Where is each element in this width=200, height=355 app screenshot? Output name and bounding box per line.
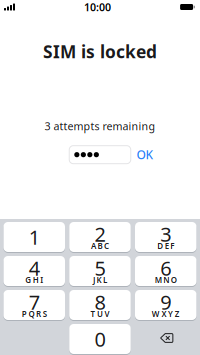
staticText: 3 attempts remaining — [44, 119, 155, 133]
staticText: 9 — [160, 289, 171, 315]
staticText: X — [161, 309, 166, 319]
staticText: D — [157, 241, 163, 251]
staticText: 2 — [94, 221, 105, 247]
staticText: K — [96, 275, 101, 285]
staticText: G — [25, 275, 31, 285]
staticText: 3 — [160, 221, 171, 247]
button[interactable]: 1 — [3, 222, 65, 252]
staticText: 4 — [29, 255, 40, 281]
staticText: 8 — [94, 289, 105, 315]
button[interactable]: 8 — [69, 290, 131, 320]
staticText: U — [97, 309, 103, 319]
button[interactable]: 3 — [135, 222, 196, 252]
button[interactable]: 7 — [3, 290, 65, 320]
staticText: A — [91, 241, 96, 251]
staticText: SIM is locked — [43, 40, 157, 63]
staticText: Y — [168, 309, 173, 319]
button[interactable]: 0 — [69, 324, 131, 354]
button[interactable]: 5 — [69, 256, 131, 286]
staticText: H — [33, 275, 39, 285]
staticText: B — [97, 241, 102, 251]
staticText: 0 — [94, 326, 105, 352]
button[interactable]: Delete — [135, 324, 196, 354]
staticText: C — [104, 241, 109, 251]
staticText: 1 — [29, 224, 40, 250]
button[interactable]: 2 — [69, 222, 131, 252]
staticText: 10:00 — [84, 0, 111, 14]
button[interactable]: 9 — [135, 290, 196, 320]
staticText: R — [36, 309, 41, 319]
staticText: W — [152, 309, 160, 319]
staticText: N — [163, 275, 169, 285]
button[interactable]: 6 — [135, 256, 196, 286]
staticText: O — [171, 275, 177, 285]
button[interactable]: 4 — [3, 256, 65, 286]
staticText: V — [105, 309, 110, 319]
staticText: L — [103, 275, 107, 285]
staticText: F — [170, 241, 174, 251]
staticText: T — [90, 309, 95, 319]
staticText: J — [93, 275, 95, 285]
staticText: 7 — [29, 289, 40, 315]
staticText: I — [40, 275, 43, 285]
staticText: S — [43, 309, 47, 319]
staticText: OK — [136, 147, 153, 163]
staticText: 6 — [160, 255, 171, 281]
staticText: 5 — [94, 255, 105, 281]
staticText: Z — [175, 309, 180, 319]
staticText: P — [22, 309, 27, 319]
staticText: M — [155, 275, 162, 285]
staticText: Q — [28, 309, 34, 319]
staticText: E — [165, 241, 169, 251]
button[interactable]: OK — [133, 145, 157, 164]
